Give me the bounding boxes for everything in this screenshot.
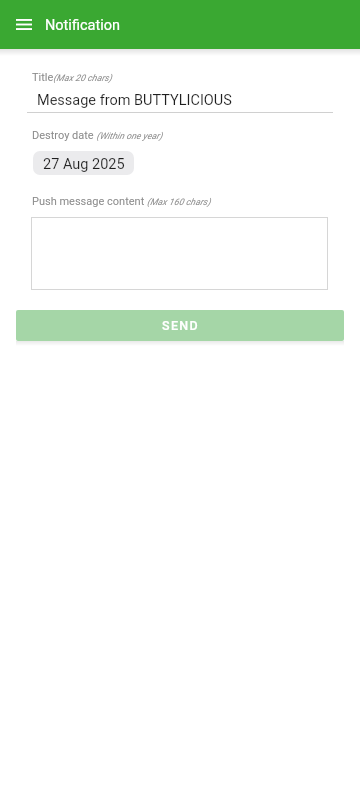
staticText: SEND [162, 318, 199, 333]
staticText: Push message content (Max 160 chars) [32, 195, 211, 208]
button[interactable]: SEND [16, 310, 344, 341]
button[interactable] [31, 217, 328, 290]
button[interactable]: 27 Aug 2025 [33, 151, 134, 175]
staticText: 27 Aug 2025 [43, 156, 125, 173]
staticText: Notification [45, 17, 120, 34]
staticText: Destroy date (Within one year) [32, 129, 163, 142]
staticText: Message from BUTTYLICIOUS [37, 92, 232, 109]
button[interactable]: Open navigation menu [4, 5, 44, 45]
staticText: Title(Max 20 chars) [32, 71, 112, 84]
